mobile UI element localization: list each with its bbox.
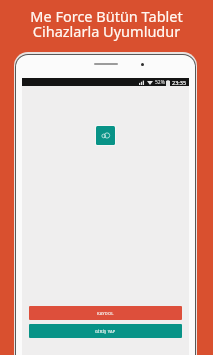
- staticText: GİRİŞ YAP: [95, 329, 116, 334]
- button[interactable]: GİRİŞ YAP: [29, 324, 182, 338]
- staticText: 52%: [155, 79, 165, 86]
- staticText: Me Force Bütün Tablet Cihazlarla Uyumlud…: [30, 6, 183, 41]
- button[interactable]: KAYDOL: [29, 306, 182, 320]
- staticText: 23:35: [172, 79, 187, 86]
- staticText: KAYDOL: [97, 311, 114, 316]
